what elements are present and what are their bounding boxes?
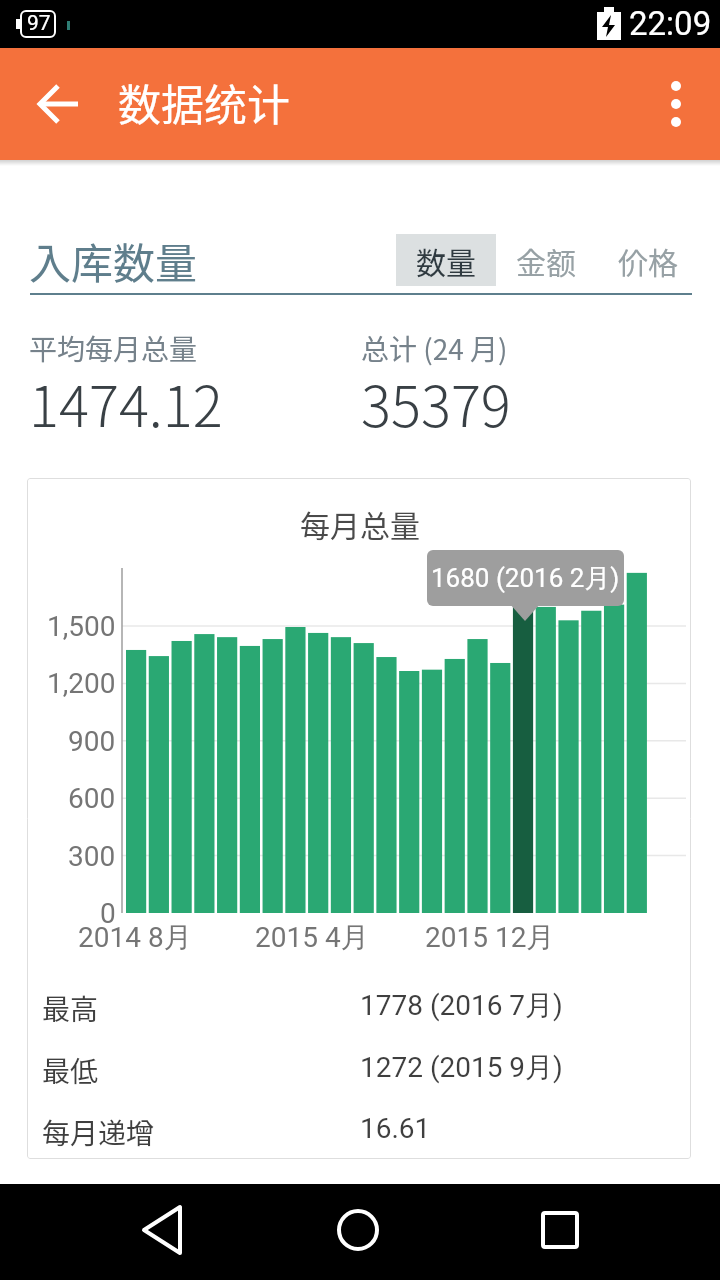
staticText: 1,200 (47, 667, 116, 700)
staticText: 入库数量 (29, 230, 198, 291)
staticText: 金额 (516, 239, 576, 282)
staticText: 最高 (42, 988, 99, 1029)
staticText: 数量 (416, 239, 476, 282)
staticText: 1778 (2016 7月) (360, 988, 563, 1023)
staticText: 总计 (24 月) (361, 328, 508, 369)
staticText: 价格 (618, 239, 678, 282)
button[interactable] (528, 1198, 592, 1262)
button[interactable] (130, 1198, 194, 1262)
staticText: 平均每月总量 (29, 328, 198, 369)
staticText: 0 (100, 897, 116, 930)
staticText: 1,500 (47, 610, 116, 643)
staticText: 35379 (361, 362, 511, 443)
button[interactable]: 价格 (608, 234, 688, 286)
staticText: 2015 4月 (255, 920, 369, 955)
button[interactable] (28, 72, 92, 136)
staticText: 数据统计 (118, 71, 290, 133)
staticText: 22:09 (629, 4, 712, 43)
staticText: 1272 (2015 9月) (360, 1050, 563, 1085)
button[interactable]: 数量 (396, 234, 496, 286)
button[interactable] (326, 1198, 390, 1262)
staticText: 300 (68, 840, 116, 873)
staticText: 2014 8月 (78, 920, 192, 955)
button[interactable]: 金额 (506, 234, 586, 286)
staticText: 2015 12月 (425, 920, 555, 955)
staticText: 1680 (2016 2月) (431, 562, 620, 595)
staticText: 16.61 (360, 1112, 431, 1145)
staticText: 900 (68, 725, 116, 758)
staticText: 97 (27, 11, 51, 36)
staticText: 每月递增 (42, 1112, 155, 1153)
staticText: 最低 (42, 1050, 99, 1091)
staticText: 每月总量 (300, 502, 420, 545)
staticText: 600 (68, 782, 116, 815)
button[interactable] (648, 72, 708, 136)
staticText: 1474.12 (29, 362, 223, 443)
